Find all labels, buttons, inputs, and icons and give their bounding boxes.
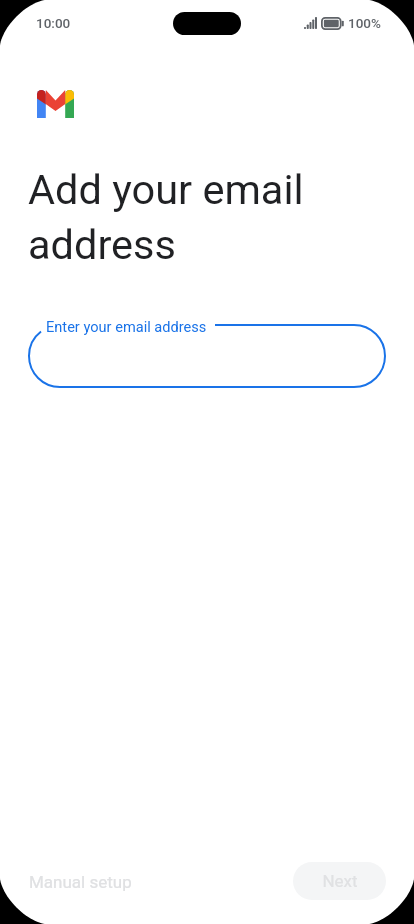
staticText: 100% — [348, 15, 381, 31]
button[interactable]: Manual setup — [17, 863, 144, 901]
button[interactable]: Next — [293, 862, 386, 900]
staticText: address — [28, 220, 176, 269]
staticText: Manual setup — [29, 872, 132, 892]
staticText: Enter your email address — [46, 318, 207, 335]
staticText: 10:00 — [36, 15, 71, 31]
button[interactable]: Enter your email address — [28, 324, 386, 388]
staticText: Add your email — [28, 165, 304, 214]
staticText: Next — [322, 871, 358, 891]
